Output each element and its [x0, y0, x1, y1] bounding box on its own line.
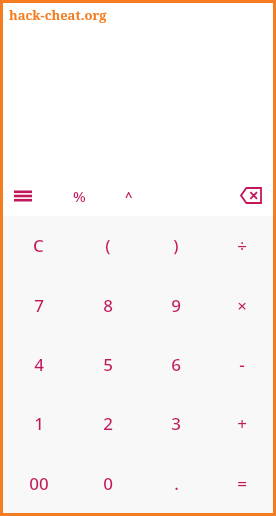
staticText: C	[33, 234, 44, 257]
staticText: ^	[125, 187, 133, 205]
button[interactable]: 8	[74, 276, 142, 335]
button[interactable]: .	[142, 454, 210, 513]
staticText: 00	[29, 472, 49, 495]
button[interactable]: 2	[74, 394, 142, 453]
button[interactable]: 3	[142, 394, 210, 453]
staticText: 2	[103, 412, 113, 435]
button[interactable]: -	[210, 335, 273, 394]
staticText: 6	[171, 353, 181, 376]
staticText: ÷	[237, 234, 247, 257]
staticText: %	[73, 186, 86, 206]
button[interactable]: 00	[3, 454, 74, 513]
button[interactable]: 7	[3, 276, 74, 335]
staticText: ×	[237, 294, 247, 317]
button[interactable]: 9	[142, 276, 210, 335]
staticText: 3	[171, 412, 181, 435]
staticText: hack-cheat.org	[9, 6, 107, 24]
staticText: .	[174, 472, 179, 495]
button[interactable]: ^	[112, 175, 146, 216]
button[interactable]: Menu	[3, 175, 42, 216]
staticText: 8	[103, 294, 113, 317]
button[interactable]: 5	[74, 335, 142, 394]
staticText: 9	[171, 294, 181, 317]
button[interactable]: ÷	[210, 216, 273, 275]
button[interactable]: %	[59, 175, 99, 216]
button[interactable]: ×	[210, 276, 273, 335]
button[interactable]: 1	[3, 394, 74, 453]
button[interactable]: 0	[74, 454, 142, 513]
staticText: 0	[103, 472, 113, 495]
button[interactable]: Backspace	[229, 175, 273, 216]
staticText: (	[105, 234, 111, 257]
button[interactable]: +	[210, 394, 273, 453]
staticText: 4	[34, 353, 44, 376]
staticText: +	[237, 412, 247, 435]
staticText: 7	[34, 294, 44, 317]
staticText: 5	[103, 353, 113, 376]
button[interactable]: )	[142, 216, 210, 275]
button[interactable]: (	[74, 216, 142, 275]
button[interactable]: 4	[3, 335, 74, 394]
button[interactable]: 6	[142, 335, 210, 394]
button[interactable]: C	[3, 216, 74, 275]
button[interactable]: =	[210, 454, 273, 513]
staticText: -	[239, 353, 245, 376]
staticText: )	[173, 234, 179, 257]
staticText: 1	[34, 412, 44, 435]
staticText: =	[237, 472, 247, 495]
